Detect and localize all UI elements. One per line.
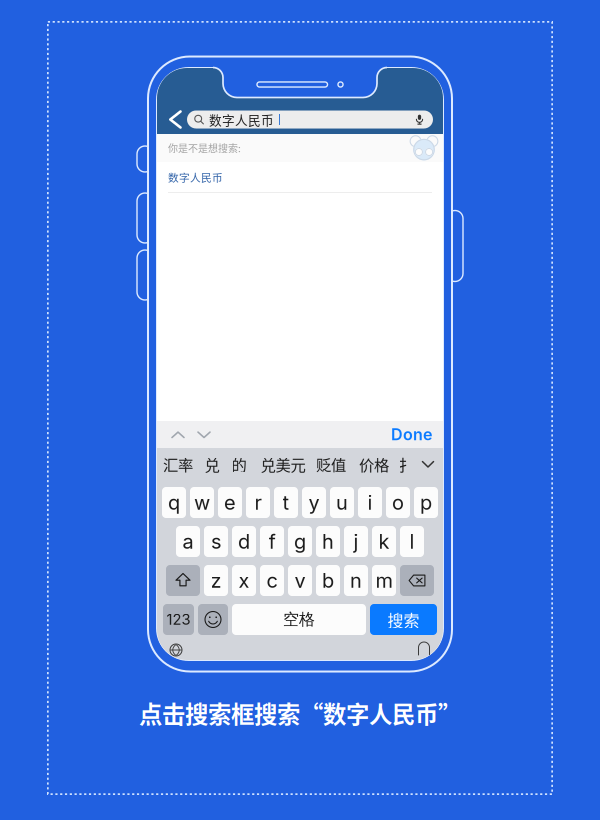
button[interactable]: Previous field — [165, 423, 191, 445]
button[interactable]: 贬值 — [314, 449, 348, 479]
staticText: u — [336, 490, 348, 515]
button[interactable]: s — [204, 526, 228, 557]
button[interactable]: o — [386, 487, 410, 518]
button[interactable]: Switch keyboard — [166, 643, 186, 657]
button[interactable]: m — [372, 565, 396, 596]
staticText: x — [238, 568, 249, 593]
staticText: 汇率 — [163, 453, 193, 475]
staticText: v — [294, 568, 305, 593]
staticText: p — [420, 490, 432, 515]
button[interactable]: 汇率 — [161, 449, 195, 479]
staticText: h — [322, 529, 334, 554]
button[interactable]: Hide keyboard — [414, 643, 434, 657]
staticText: 的 — [231, 453, 246, 475]
button[interactable]: b — [316, 565, 340, 596]
staticText: 你是不是想搜索: — [168, 141, 241, 155]
staticText: y — [308, 490, 319, 515]
staticText: 价格 — [359, 453, 389, 475]
button[interactable]: 空格 — [232, 604, 366, 635]
button[interactable]: Shift — [166, 565, 200, 596]
button[interactable]: 数字人民币 — [187, 107, 433, 125]
button[interactable]: 的 — [229, 449, 249, 479]
staticText: a — [182, 529, 193, 554]
staticText: 数字人民币 — [168, 169, 223, 185]
staticText: l — [409, 529, 414, 554]
staticText: d — [238, 529, 250, 554]
staticText: 123 — [166, 611, 190, 628]
staticText: 贬值 — [316, 453, 346, 475]
staticText: e — [224, 490, 236, 515]
staticText: r — [254, 490, 261, 515]
button[interactable]: i — [358, 487, 382, 518]
staticText: f — [268, 529, 275, 554]
staticText: g — [294, 529, 306, 554]
staticText: 数字人民币 — [209, 110, 274, 129]
button[interactable]: 兑 — [202, 449, 222, 479]
button[interactable]: x — [232, 565, 256, 596]
staticText: o — [392, 490, 404, 515]
button[interactable]: c — [260, 565, 284, 596]
button[interactable]: g — [288, 526, 312, 557]
staticText: s — [211, 529, 221, 554]
staticText: m — [375, 568, 392, 593]
button[interactable]: d — [232, 526, 256, 557]
staticText: 空格 — [283, 609, 315, 630]
staticText: 扌 — [398, 453, 413, 475]
staticText: 点击搜索框搜索“数字人民币” — [139, 696, 461, 730]
button[interactable]: p — [414, 487, 438, 518]
staticText: c — [266, 568, 277, 593]
button[interactable]: Delete — [400, 565, 434, 596]
button[interactable]: u — [330, 487, 354, 518]
button[interactable]: k — [372, 526, 396, 557]
staticText: q — [168, 490, 180, 515]
staticText: w — [194, 490, 210, 515]
button[interactable]: q — [162, 487, 186, 518]
staticText: Done — [391, 425, 432, 444]
button[interactable]: y — [302, 487, 326, 518]
button[interactable]: a — [176, 526, 200, 557]
button[interactable]: w — [190, 487, 214, 518]
staticText: z — [210, 568, 221, 593]
button[interactable]: v — [288, 565, 312, 596]
staticText: 搜索 — [387, 608, 419, 631]
staticText: j — [353, 529, 358, 554]
button[interactable]: 价格 — [357, 449, 391, 479]
button[interactable]: More candidates — [417, 453, 439, 475]
button[interactable]: t — [274, 487, 298, 518]
button[interactable]: Done — [391, 425, 432, 444]
button[interactable]: Back — [163, 103, 187, 129]
button[interactable]: f — [260, 526, 284, 557]
staticText: n — [350, 568, 362, 593]
staticText: t — [282, 490, 289, 515]
button[interactable]: n — [344, 565, 368, 596]
button[interactable]: h — [316, 526, 340, 557]
button[interactable]: 搜索 — [370, 604, 437, 635]
staticText: k — [378, 529, 389, 554]
button[interactable]: 扌 — [397, 449, 415, 479]
button[interactable]: Next field — [191, 423, 217, 445]
button[interactable]: j — [344, 526, 368, 557]
button[interactable]: r — [246, 487, 270, 518]
staticText: i — [367, 490, 372, 515]
button[interactable]: 数字人民币 — [157, 162, 443, 194]
button[interactable]: l — [400, 526, 424, 557]
button[interactable]: 兑美元 — [259, 449, 307, 479]
staticText: b — [322, 568, 334, 593]
button[interactable]: 123 — [163, 604, 194, 635]
button[interactable]: z — [204, 565, 228, 596]
staticText: 兑 — [204, 453, 219, 475]
staticText: 兑美元 — [260, 453, 305, 475]
button[interactable]: Emoji — [198, 604, 228, 635]
button[interactable]: e — [218, 487, 242, 518]
